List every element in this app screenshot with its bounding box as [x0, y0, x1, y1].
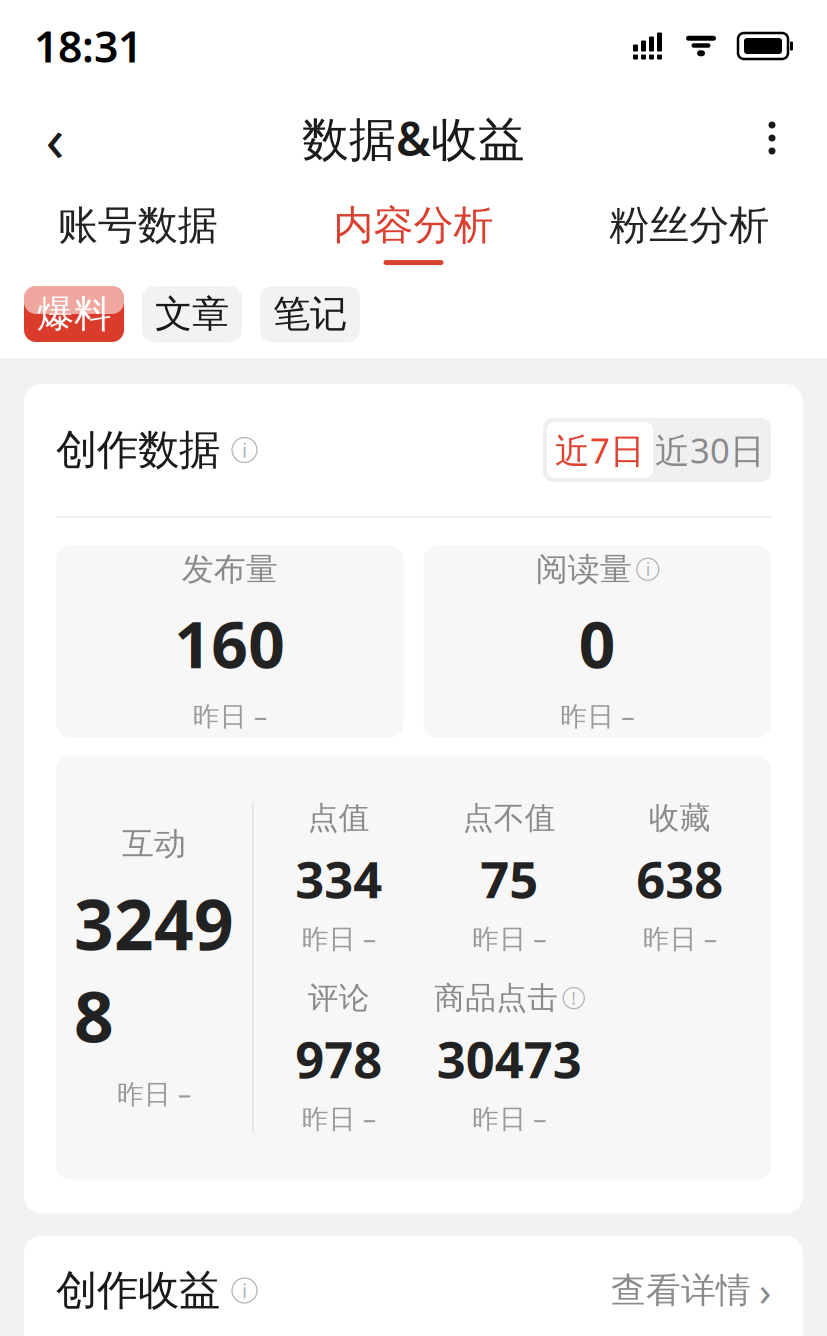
staticText: 978 [295, 1025, 382, 1092]
button[interactable]: 笔记 [260, 286, 360, 342]
staticText: 昨日 – [117, 1075, 191, 1111]
button[interactable]: 账号数据 [0, 184, 276, 270]
button[interactable]: 查看详情 [611, 1264, 771, 1317]
staticText: 发布量 [182, 550, 278, 589]
staticText: 互动 [122, 824, 186, 863]
staticText: 创作收益 [56, 1265, 220, 1316]
staticText: ‹ [45, 97, 64, 179]
staticText: 30473 [437, 1025, 582, 1092]
staticText: 点值 [308, 799, 370, 837]
staticText: 近30日 [655, 427, 765, 473]
staticText: 近7日 [555, 427, 645, 473]
staticText: 查看详情 [611, 1269, 751, 1312]
staticText: 334 [295, 845, 382, 912]
button[interactable]: 爆料 [24, 286, 124, 342]
staticText: 阅读量 [536, 550, 632, 589]
staticText: i [242, 1277, 247, 1304]
staticText: 笔记 [273, 291, 347, 337]
staticText: i [242, 437, 247, 463]
staticText: 爆料 [37, 291, 111, 337]
staticText: 昨日 – [302, 920, 376, 956]
staticText: › [759, 1264, 771, 1317]
staticText: 638 [636, 845, 723, 912]
button[interactable]: 近30日 [653, 422, 767, 478]
staticText: 昨日 – [643, 920, 717, 956]
staticText: 收藏 [649, 799, 711, 837]
staticText: 账号数据 [58, 201, 218, 250]
button[interactable]: 粉丝分析 [551, 184, 827, 270]
button[interactable]: Back [22, 105, 88, 171]
staticText: 商品点击 [434, 979, 558, 1017]
staticText: 粉丝分析 [609, 201, 769, 250]
staticText: 0 [579, 601, 616, 686]
staticText: 内容分析 [333, 201, 493, 250]
staticText: 数据&收益 [302, 107, 525, 169]
staticText: 文章 [155, 291, 229, 337]
staticText: 昨日 – [472, 1100, 546, 1136]
staticText: 昨日 – [472, 920, 546, 956]
staticText: ! [571, 987, 576, 1010]
button[interactable]: 近7日 [547, 422, 653, 478]
button[interactable]: 文章 [142, 286, 242, 342]
staticText: 点不值 [463, 799, 556, 837]
staticText: 32498 [74, 877, 234, 1061]
staticText: 18:31 [34, 18, 142, 74]
button[interactable]: 内容分析 [276, 184, 551, 270]
staticText: 75 [480, 845, 538, 912]
staticText: 昨日 – [302, 1100, 376, 1136]
staticText: 160 [174, 601, 285, 686]
staticText: 昨日 – [560, 698, 634, 733]
staticText: i [646, 558, 650, 581]
staticText: 评论 [308, 979, 370, 1017]
button[interactable]: More options [739, 105, 805, 171]
staticText: 昨日 – [193, 698, 267, 733]
staticText: 创作数据 [56, 425, 220, 475]
